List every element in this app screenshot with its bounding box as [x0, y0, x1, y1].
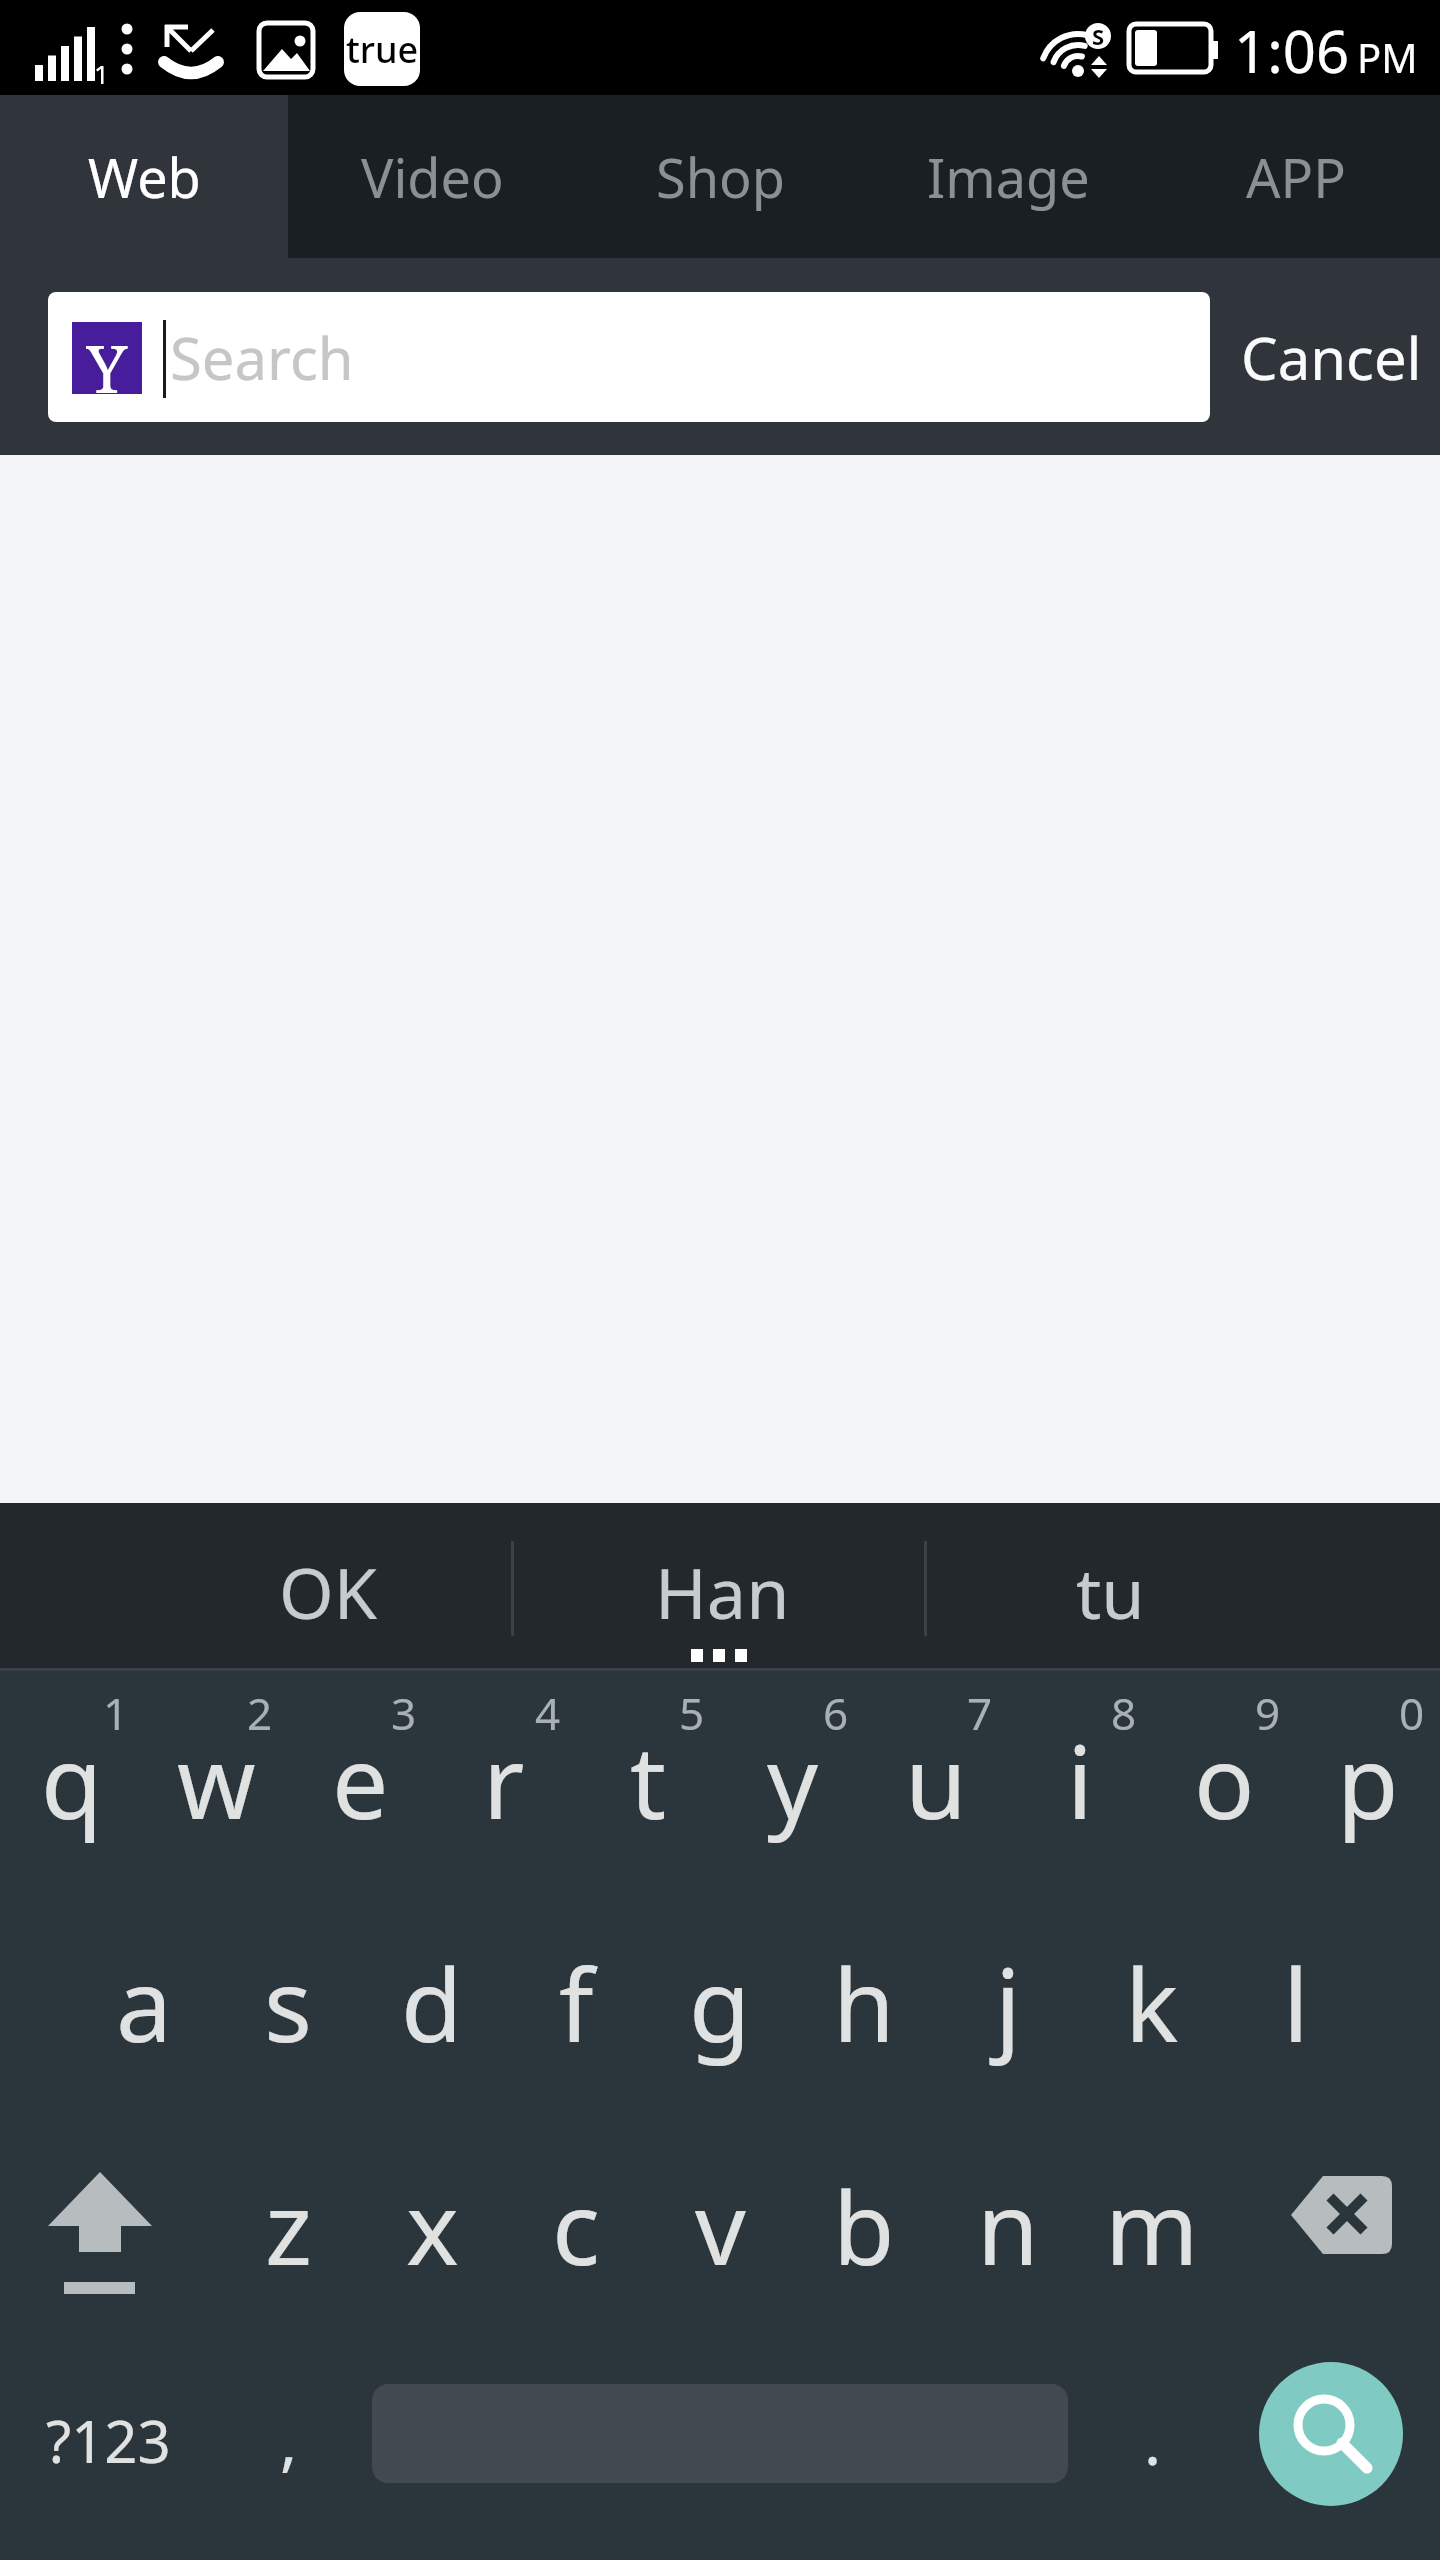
button[interactable]: ?123 [28, 2360, 188, 2520]
staticText: a [116, 1935, 173, 2071]
button[interactable]: q [0, 1668, 144, 1891]
button[interactable]: f [504, 1891, 648, 2114]
staticText: 1:06 [1234, 11, 1350, 90]
staticText: Cancel [1241, 318, 1422, 397]
staticText: l [1283, 1935, 1309, 2071]
staticText: q [41, 1712, 103, 1848]
staticText: p [1337, 1712, 1399, 1848]
staticText: 3 [391, 1683, 417, 1743]
button[interactable]: u [864, 1668, 1008, 1891]
staticText: . [1144, 2397, 1162, 2484]
staticText: true [346, 25, 419, 74]
button[interactable]: Shop [576, 95, 864, 258]
staticText: j [995, 1935, 1021, 2071]
button[interactable]: i [1008, 1668, 1152, 1891]
staticText: o [1194, 1712, 1255, 1848]
button[interactable]: m [1080, 2114, 1224, 2337]
staticText: 1 [94, 56, 109, 91]
staticText: b [833, 2158, 895, 2294]
staticText: h [833, 1935, 895, 2071]
staticText: z [265, 2158, 312, 2294]
staticText: e [332, 1712, 389, 1848]
staticText: Video [361, 140, 504, 214]
button[interactable] [511, 1503, 924, 1668]
button[interactable]: Web [0, 95, 288, 258]
button[interactable] [28, 2114, 172, 2337]
button[interactable]: e [288, 1668, 432, 1891]
staticText: y [767, 1712, 818, 1848]
staticText: Shop [656, 140, 785, 214]
button[interactable]: Image [864, 95, 1152, 258]
button[interactable]: c [504, 2114, 648, 2337]
button[interactable]: y [720, 1668, 864, 1891]
staticText: w [177, 1712, 256, 1848]
staticText: Han [655, 1544, 790, 1639]
button[interactable]: , [217, 2360, 361, 2520]
staticText: g [689, 1935, 751, 2071]
button[interactable]: p [1296, 1668, 1440, 1891]
staticText: 9 [1255, 1683, 1281, 1743]
staticText: k [1125, 1935, 1179, 2071]
button[interactable] [1269, 2114, 1413, 2337]
button[interactable]: z [216, 2114, 360, 2337]
staticText: r [483, 1712, 525, 1848]
staticText: d [401, 1935, 463, 2071]
button[interactable]: w [144, 1668, 288, 1891]
staticText: t [630, 1712, 667, 1848]
staticText: u [905, 1712, 967, 1848]
button[interactable]: o [1152, 1668, 1296, 1891]
button[interactable]: h [792, 1891, 936, 2114]
staticText: s [264, 1935, 312, 2071]
staticText: ?123 [46, 2401, 171, 2480]
staticText: PM [1357, 30, 1418, 84]
staticText: c [552, 2158, 600, 2294]
button[interactable]: l [1224, 1891, 1368, 2114]
button[interactable]: Cancel [1222, 292, 1440, 422]
button[interactable]: g [648, 1891, 792, 2114]
staticText: x [406, 2158, 459, 2294]
staticText: , [280, 2397, 298, 2484]
staticText: tu [1076, 1544, 1145, 1639]
button[interactable] [0, 1503, 511, 1668]
button[interactable]: j [936, 1891, 1080, 2114]
button[interactable]: d [360, 1891, 504, 2114]
button[interactable]: b [792, 2114, 936, 2337]
staticText: Image [927, 140, 1090, 214]
button[interactable]: r [432, 1668, 576, 1891]
staticText: m [1105, 2158, 1199, 2294]
staticText: OK [279, 1544, 377, 1639]
staticText: S [1092, 21, 1105, 51]
button[interactable]: k [1080, 1891, 1224, 2114]
button[interactable]: a [72, 1891, 216, 2114]
button[interactable] [48, 292, 1210, 422]
staticText: 1 [103, 1683, 129, 1743]
staticText: Web [88, 140, 201, 214]
staticText: 5 [679, 1683, 705, 1743]
staticText: 4 [535, 1683, 561, 1743]
staticText: 8 [1111, 1683, 1137, 1743]
staticText: f [559, 1935, 594, 2071]
staticText: 7 [967, 1683, 993, 1743]
button[interactable]: v [648, 2114, 792, 2337]
button[interactable]: n [936, 2114, 1080, 2337]
button[interactable] [924, 1503, 1440, 1668]
button[interactable]: s [216, 1891, 360, 2114]
button[interactable]: APP [1152, 95, 1440, 258]
staticText: Search [170, 318, 354, 397]
button[interactable]: x [360, 2114, 504, 2337]
button[interactable]: . [1081, 2360, 1225, 2520]
staticText: i [1067, 1712, 1093, 1848]
staticText: 2 [247, 1683, 273, 1743]
button[interactable]: Video [288, 95, 576, 258]
staticText: Y [86, 322, 128, 394]
button[interactable] [1259, 2362, 1403, 2506]
staticText: APP [1246, 140, 1346, 214]
staticText: n [977, 2158, 1039, 2294]
staticText: 6 [823, 1683, 849, 1743]
staticText: 0 [1399, 1683, 1425, 1743]
staticText: v [695, 2158, 746, 2294]
button[interactable]: t [576, 1668, 720, 1891]
